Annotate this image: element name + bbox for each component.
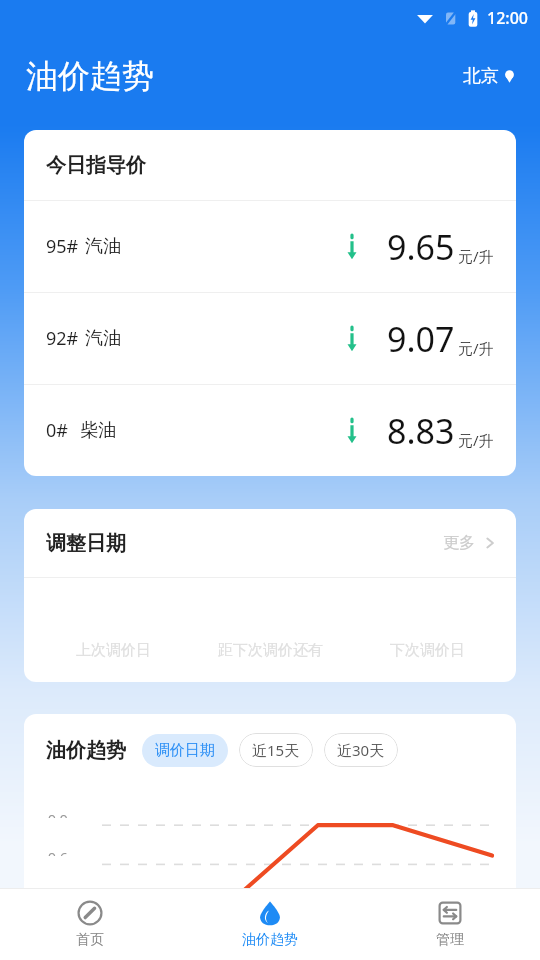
staticText: 上次调价日 <box>76 641 151 660</box>
staticText: 近30天 <box>337 740 385 760</box>
staticText: 首页 <box>76 931 104 949</box>
staticText: 北京 <box>463 65 499 88</box>
button[interactable]: 95# <box>24 201 516 292</box>
staticText: 9.07 <box>387 316 455 362</box>
staticText: 汽油 <box>85 327 121 350</box>
staticText: 95# <box>46 234 79 259</box>
button[interactable]: 北京 <box>459 61 520 92</box>
staticText: 元/升 <box>458 246 494 266</box>
staticText: 汽油 <box>85 235 121 258</box>
button[interactable]: 首页 <box>0 889 180 960</box>
staticText: 近15天 <box>252 740 300 760</box>
button[interactable]: 92# <box>24 293 516 384</box>
staticText: 0# <box>46 418 68 443</box>
staticText: 管理 <box>436 931 464 949</box>
button[interactable]: 近30天 <box>324 733 398 767</box>
staticText: 调价日期 <box>155 741 215 760</box>
staticText: 元/升 <box>458 338 494 358</box>
button[interactable]: 近15天 <box>239 733 313 767</box>
staticText: 8.83 <box>387 408 455 454</box>
staticText: 元/升 <box>458 430 494 450</box>
staticText: 调整日期 <box>46 531 126 556</box>
staticText: 9.6 <box>48 848 68 856</box>
button[interactable]: 调价日期 <box>142 734 228 767</box>
button[interactable]: 油价趋势 <box>180 889 360 960</box>
staticText: 油价趋势 <box>242 931 298 949</box>
staticText: 距下次调价还有 <box>218 641 323 660</box>
staticText: 柴油 <box>80 419 116 442</box>
staticText: 油价趋势 <box>46 738 126 763</box>
staticText: 92# <box>46 326 79 351</box>
staticText: 9.65 <box>387 224 455 270</box>
staticText: 下次调价日 <box>390 641 465 660</box>
button[interactable]: 更多 <box>431 527 516 559</box>
button[interactable]: 0# <box>24 385 516 476</box>
staticText: 9.9 <box>48 810 68 818</box>
staticText: 更多 <box>443 533 475 553</box>
button[interactable]: 管理 <box>360 889 540 960</box>
staticText: 12:00 <box>487 7 528 29</box>
staticText: 今日指导价 <box>46 153 146 178</box>
staticText: 油价趋势 <box>26 56 154 96</box>
